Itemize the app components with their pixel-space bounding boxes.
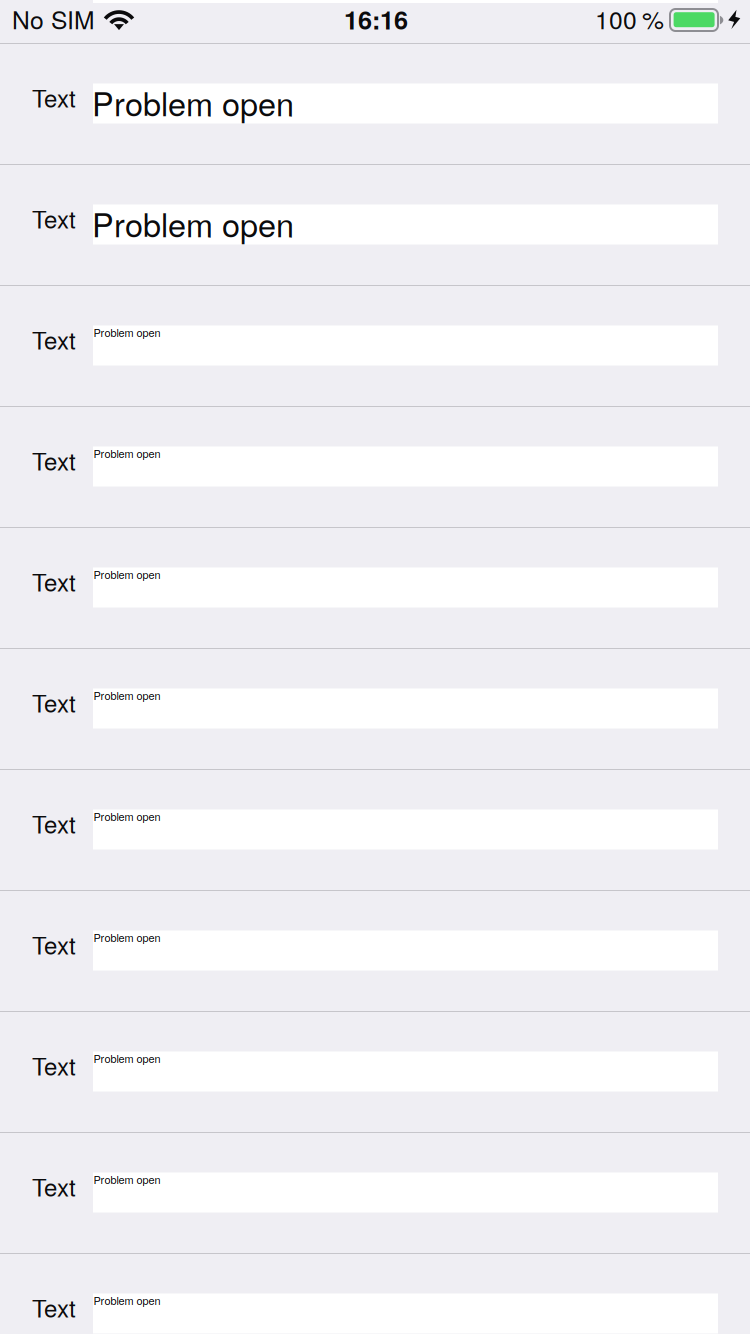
staticText: Problem open bbox=[93, 929, 160, 945]
staticText: No SIM bbox=[12, 1, 95, 36]
staticText: Text bbox=[32, 564, 76, 598]
staticText: Text bbox=[32, 806, 76, 840]
button[interactable]: Text bbox=[0, 1253, 750, 1334]
button[interactable]: Text bbox=[0, 1011, 750, 1132]
staticText: Problem open bbox=[93, 687, 160, 703]
staticText: Text bbox=[32, 322, 76, 356]
staticText: Problem open bbox=[93, 1050, 160, 1066]
staticText: Text bbox=[32, 1048, 76, 1082]
staticText: Problem open bbox=[93, 566, 160, 582]
staticText: Text bbox=[32, 80, 76, 114]
button[interactable]: Text bbox=[0, 43, 750, 164]
staticText: 100 % bbox=[595, 1, 664, 36]
staticText: Problem open bbox=[93, 808, 160, 824]
button[interactable]: Text bbox=[0, 285, 750, 406]
staticText: Problem open bbox=[93, 1292, 160, 1308]
button[interactable]: Text bbox=[0, 406, 750, 527]
button[interactable]: Text bbox=[0, 769, 750, 890]
staticText: Text bbox=[32, 1169, 76, 1203]
staticText: Text bbox=[32, 1290, 76, 1324]
staticText: Text bbox=[32, 201, 76, 235]
staticText: Text bbox=[32, 685, 76, 719]
staticText: 16:16 bbox=[344, 1, 408, 37]
button[interactable]: Text bbox=[0, 1132, 750, 1253]
staticText: Problem open bbox=[93, 1171, 160, 1187]
staticText: Problem open bbox=[93, 324, 160, 340]
staticText: Text bbox=[32, 443, 76, 477]
button[interactable]: Text bbox=[0, 890, 750, 1011]
staticText: Text bbox=[32, 927, 76, 961]
staticText: Problem open bbox=[93, 445, 160, 461]
button[interactable]: Text bbox=[0, 527, 750, 648]
button[interactable]: Text bbox=[0, 164, 750, 285]
button[interactable]: Text bbox=[0, 648, 750, 769]
staticText: Problem open bbox=[92, 200, 294, 246]
staticText: Problem open bbox=[92, 79, 294, 125]
